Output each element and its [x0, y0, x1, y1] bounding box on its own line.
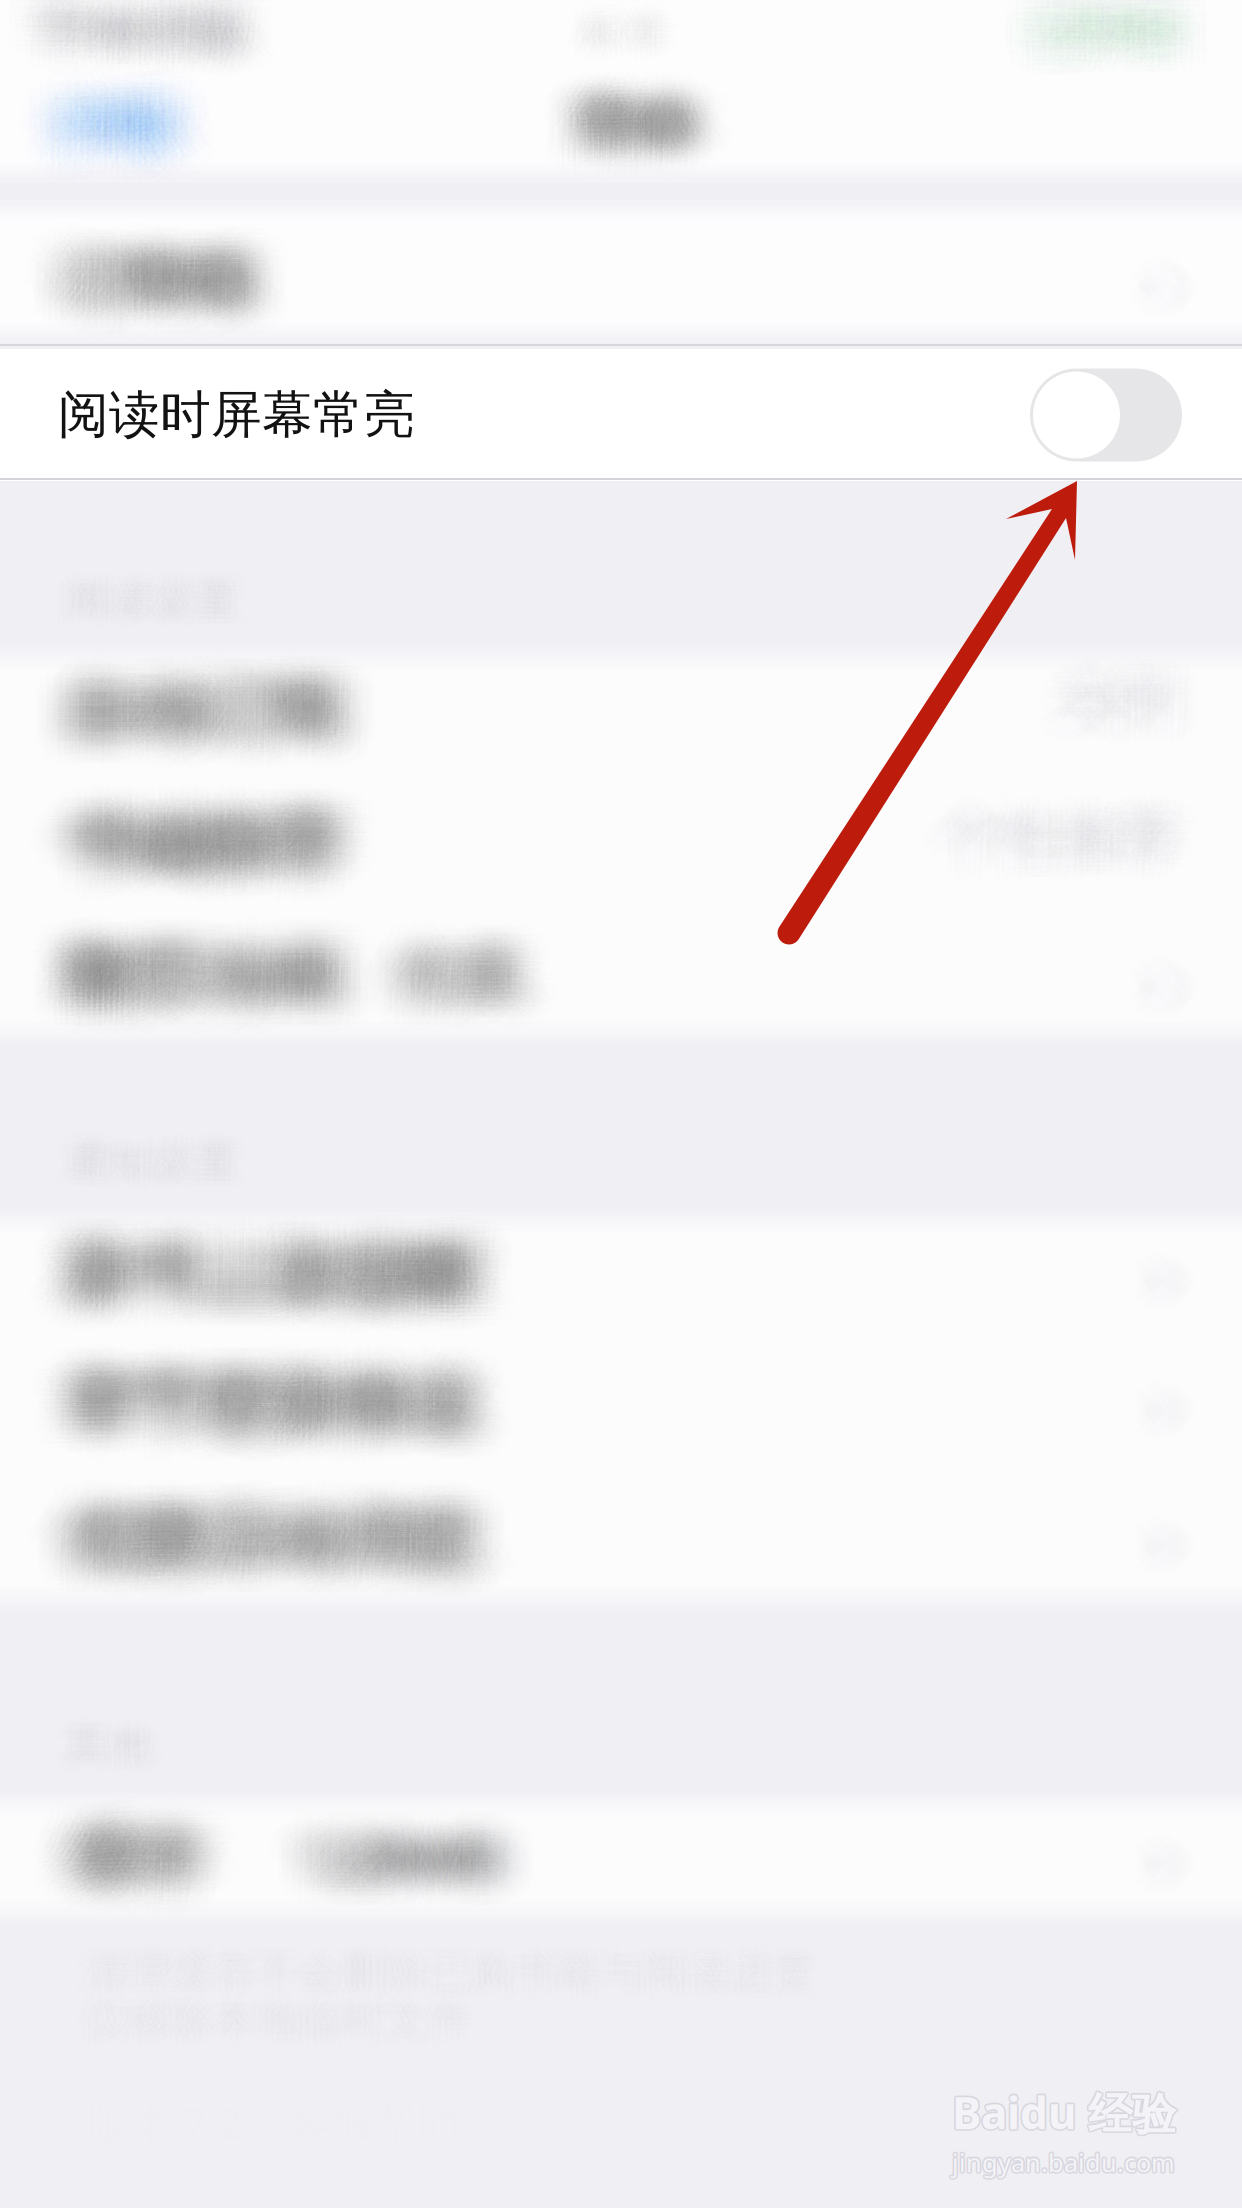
staticText: 新书上架提醒	[56, 1226, 470, 1311]
staticText: 护眼	[31, 65, 149, 137]
staticText: ›	[1144, 947, 1167, 1046]
staticText: 新书上架提醒	[75, 1233, 489, 1318]
staticText: 阅读设置	[77, 555, 249, 608]
staticText: 护眼	[57, 111, 175, 183]
staticText: 订阅项	[32, 259, 224, 338]
staticText: 自动订阅	[47, 678, 323, 764]
staticText: 简体	[573, 114, 695, 189]
staticText: 阅读设置	[86, 566, 258, 619]
staticText: 字体排版	[13, 0, 225, 45]
staticText: 简体	[589, 103, 711, 179]
staticText: 书城推荐	[73, 776, 349, 862]
button[interactable]: 阅读时屏幕常亮	[0, 349, 1242, 481]
staticText: 128MB	[281, 1840, 482, 1921]
staticText: 关闭	[1055, 647, 1173, 719]
staticText: 通知设置	[65, 1145, 237, 1197]
staticText: 章节更新推送	[41, 1356, 455, 1442]
staticText: 阅读设置	[94, 583, 266, 636]
staticText: 个性推荐	[925, 781, 1161, 853]
staticText: 已开启	[1016, 0, 1160, 34]
staticText: 已开启	[1046, 28, 1190, 87]
staticText: 通知设置	[40, 1144, 212, 1196]
staticText: 字体排版	[63, 12, 275, 77]
staticText: 护眼	[46, 101, 164, 173]
staticText: 新书上架提醒	[36, 1235, 450, 1320]
staticText: 新书上架提醒	[91, 1231, 505, 1316]
staticText: 新书上架提醒	[73, 1227, 487, 1313]
staticText: 仿真	[362, 929, 490, 1008]
staticText: 翻页动画	[93, 929, 369, 1014]
staticText: 字体排版	[29, 4, 241, 70]
staticText: 128MB	[337, 1822, 538, 1904]
staticText: 翻页动画	[73, 929, 349, 1015]
staticText: 新书上架提醒	[85, 1209, 499, 1294]
staticText: 仿真	[371, 946, 499, 1025]
staticText: 翻页动画	[55, 916, 331, 1001]
staticText: 书城推荐	[68, 778, 344, 864]
staticText: 优惠活动消息	[94, 1488, 508, 1573]
staticText: 标准	[545, 1, 631, 53]
staticText: 缓存	[77, 1834, 211, 1916]
staticText: 优惠活动消息	[92, 1506, 506, 1591]
staticText: 阅读设置	[64, 599, 236, 652]
staticText: 缓存	[69, 1790, 203, 1872]
staticText: 个性推荐	[947, 772, 1183, 845]
staticText: 标准	[615, 6, 701, 59]
staticText: 优惠活动消息	[30, 1512, 444, 1597]
staticText: 优惠活动消息	[103, 1492, 517, 1578]
staticText: 简体	[591, 109, 713, 184]
staticText: 自动订阅	[24, 668, 300, 753]
staticText: 阅读设置	[64, 591, 236, 643]
staticText: 自动订阅	[55, 655, 331, 740]
staticText: ›	[1188, 944, 1211, 1044]
staticText: 通知设置	[41, 1148, 213, 1201]
staticText: 订阅项	[99, 238, 291, 316]
staticText: 简体	[599, 87, 721, 162]
staticText: ›	[1130, 1782, 1153, 1881]
staticText: 标准	[578, 23, 664, 75]
staticText: 其他	[51, 1705, 137, 1757]
staticText: 简体	[548, 76, 670, 151]
staticText: 书城推荐	[41, 807, 317, 892]
staticText: 订阅项	[76, 255, 268, 334]
staticText: 自动订阅	[87, 694, 363, 779]
staticText: 新书上架提醒	[77, 1252, 491, 1337]
staticText: 关闭	[1083, 650, 1201, 722]
staticText: 订阅项	[83, 267, 275, 345]
staticText: 简体	[586, 59, 708, 135]
staticText: 章节更新推送	[65, 1335, 479, 1420]
staticText: 书城推荐	[84, 783, 360, 868]
staticText: 仿真	[367, 917, 495, 995]
staticText: 仿真	[433, 942, 561, 1020]
staticText: 新书上架提醒	[69, 1243, 483, 1328]
staticText: 订阅项	[58, 235, 250, 314]
staticText: 新书上架提醒	[54, 1244, 468, 1329]
staticText: 个性推荐	[963, 812, 1199, 884]
staticText: 翻页动画	[74, 913, 350, 998]
staticText: 新书上架提醒	[87, 1234, 501, 1320]
